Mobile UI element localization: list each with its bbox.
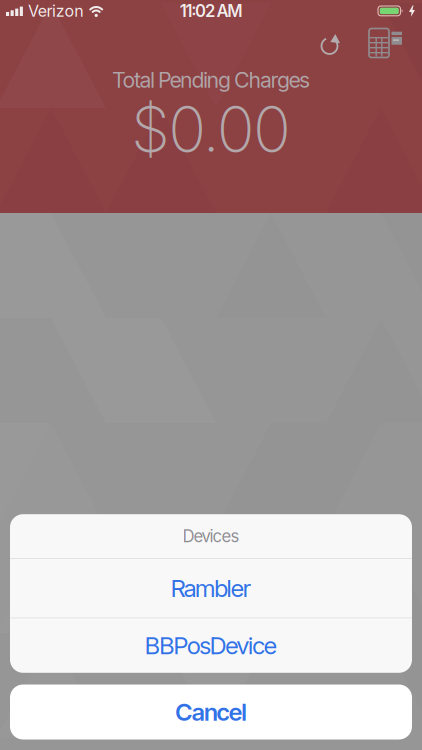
staticText: BBPosDevice [144, 631, 277, 660]
button[interactable]: Card reader [365, 24, 407, 63]
button[interactable]: Rambler [10, 559, 412, 617]
staticText: 11:02 AM [180, 1, 242, 21]
button[interactable]: Cancel [10, 684, 412, 739]
staticText: Devices [182, 526, 239, 546]
button[interactable]: Refresh [313, 28, 346, 61]
staticText: Total Pending Charges [112, 67, 310, 93]
staticText: Verizon [28, 1, 83, 21]
staticText: $0.00 [131, 91, 291, 167]
button[interactable]: BBPosDevice [10, 618, 412, 673]
staticText: Cancel [175, 697, 247, 726]
staticText: Rambler [170, 574, 252, 603]
